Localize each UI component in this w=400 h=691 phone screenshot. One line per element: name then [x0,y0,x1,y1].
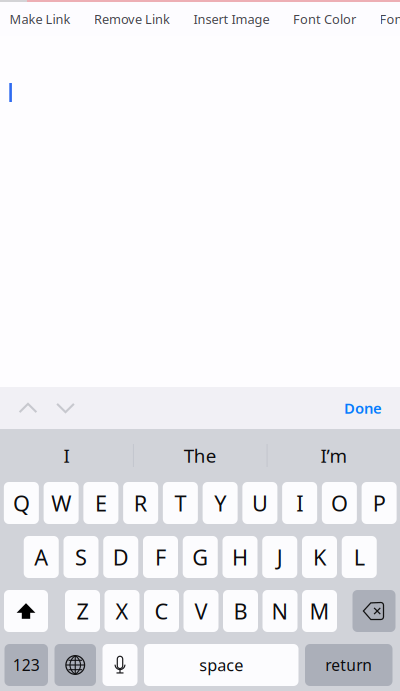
staticText: space [199,654,243,676]
staticText: A [34,542,48,572]
staticText: C [154,596,168,626]
button[interactable]: E [83,482,118,524]
staticText: T [174,488,186,518]
button[interactable]: Previous [0,387,56,429]
staticText: Z [76,596,88,626]
button[interactable]: R [123,482,158,524]
staticText: J [277,542,283,572]
staticText: Done [344,398,382,418]
button[interactable]: return [305,644,392,686]
staticText: Q [13,488,30,518]
button[interactable]: Remove Link [94,2,193,36]
button[interactable]: Done [344,387,400,429]
staticText: L [354,542,365,572]
button[interactable]: The [134,429,267,482]
button[interactable]: Shift [4,590,48,632]
button[interactable]: Font Size [379,2,400,36]
button[interactable]: G [183,536,218,578]
staticText: I’m [320,443,347,468]
button[interactable]: I [282,482,317,524]
button[interactable]: M [302,590,337,632]
staticText: S [75,542,87,572]
staticText: The [184,443,217,468]
staticText: Remove Link [94,10,170,28]
staticText: H [232,542,248,572]
staticText: return [325,654,372,676]
button[interactable]: Font Color [293,2,379,36]
staticText: Insert Image [193,10,269,28]
staticText: Font Size [379,10,400,28]
button[interactable]: Y [203,482,238,524]
button[interactable]: Delete [352,590,395,632]
button[interactable]: N [262,590,297,632]
button[interactable]: Dictation [102,644,137,686]
button[interactable]: T [163,482,198,524]
staticText: D [113,542,129,572]
button[interactable]: F [143,536,178,578]
staticText: Make Link [9,10,70,28]
button[interactable]: Make Link [9,2,94,36]
button[interactable]: I’m [268,429,400,482]
button[interactable]: I [0,429,133,482]
button[interactable]: U [242,482,277,524]
staticText: F [155,542,166,572]
staticText: Y [214,488,226,518]
button[interactable]: H [222,536,257,578]
button[interactable]: W [44,482,79,524]
button[interactable]: J [262,536,297,578]
button[interactable]: space [144,644,298,686]
staticText: P [373,488,386,518]
button[interactable]: Next [56,387,111,429]
staticText: 123 [13,654,40,676]
button[interactable]: L [342,536,377,578]
staticText: U [252,488,268,518]
staticText: X [115,596,128,626]
button[interactable]: V [183,590,218,632]
staticText: Font Color [293,10,356,28]
staticText: B [233,596,247,626]
staticText: N [271,596,288,626]
button[interactable]: K [302,536,337,578]
staticText: K [313,542,326,572]
button[interactable]: C [144,590,179,632]
button[interactable]: S [63,536,98,578]
button[interactable]: Insert Image [193,2,293,36]
staticText: R [134,488,148,518]
staticText: W [51,488,71,518]
button[interactable]: O [322,482,357,524]
staticText: G [192,542,208,572]
button[interactable]: B [223,590,258,632]
button[interactable]: Z [65,590,100,632]
staticText: I [64,443,70,468]
button[interactable]: Next keyboard [54,644,96,686]
staticText: I [296,488,303,518]
button[interactable]: A [24,536,59,578]
button[interactable]: Q [4,482,39,524]
staticText: E [95,488,107,518]
staticText: M [309,596,329,626]
staticText: V [194,596,207,626]
button[interactable]: P [362,482,397,524]
button[interactable]: D [103,536,138,578]
button[interactable]: X [104,590,139,632]
staticText: O [331,488,348,518]
button[interactable]: 123 [4,644,48,686]
